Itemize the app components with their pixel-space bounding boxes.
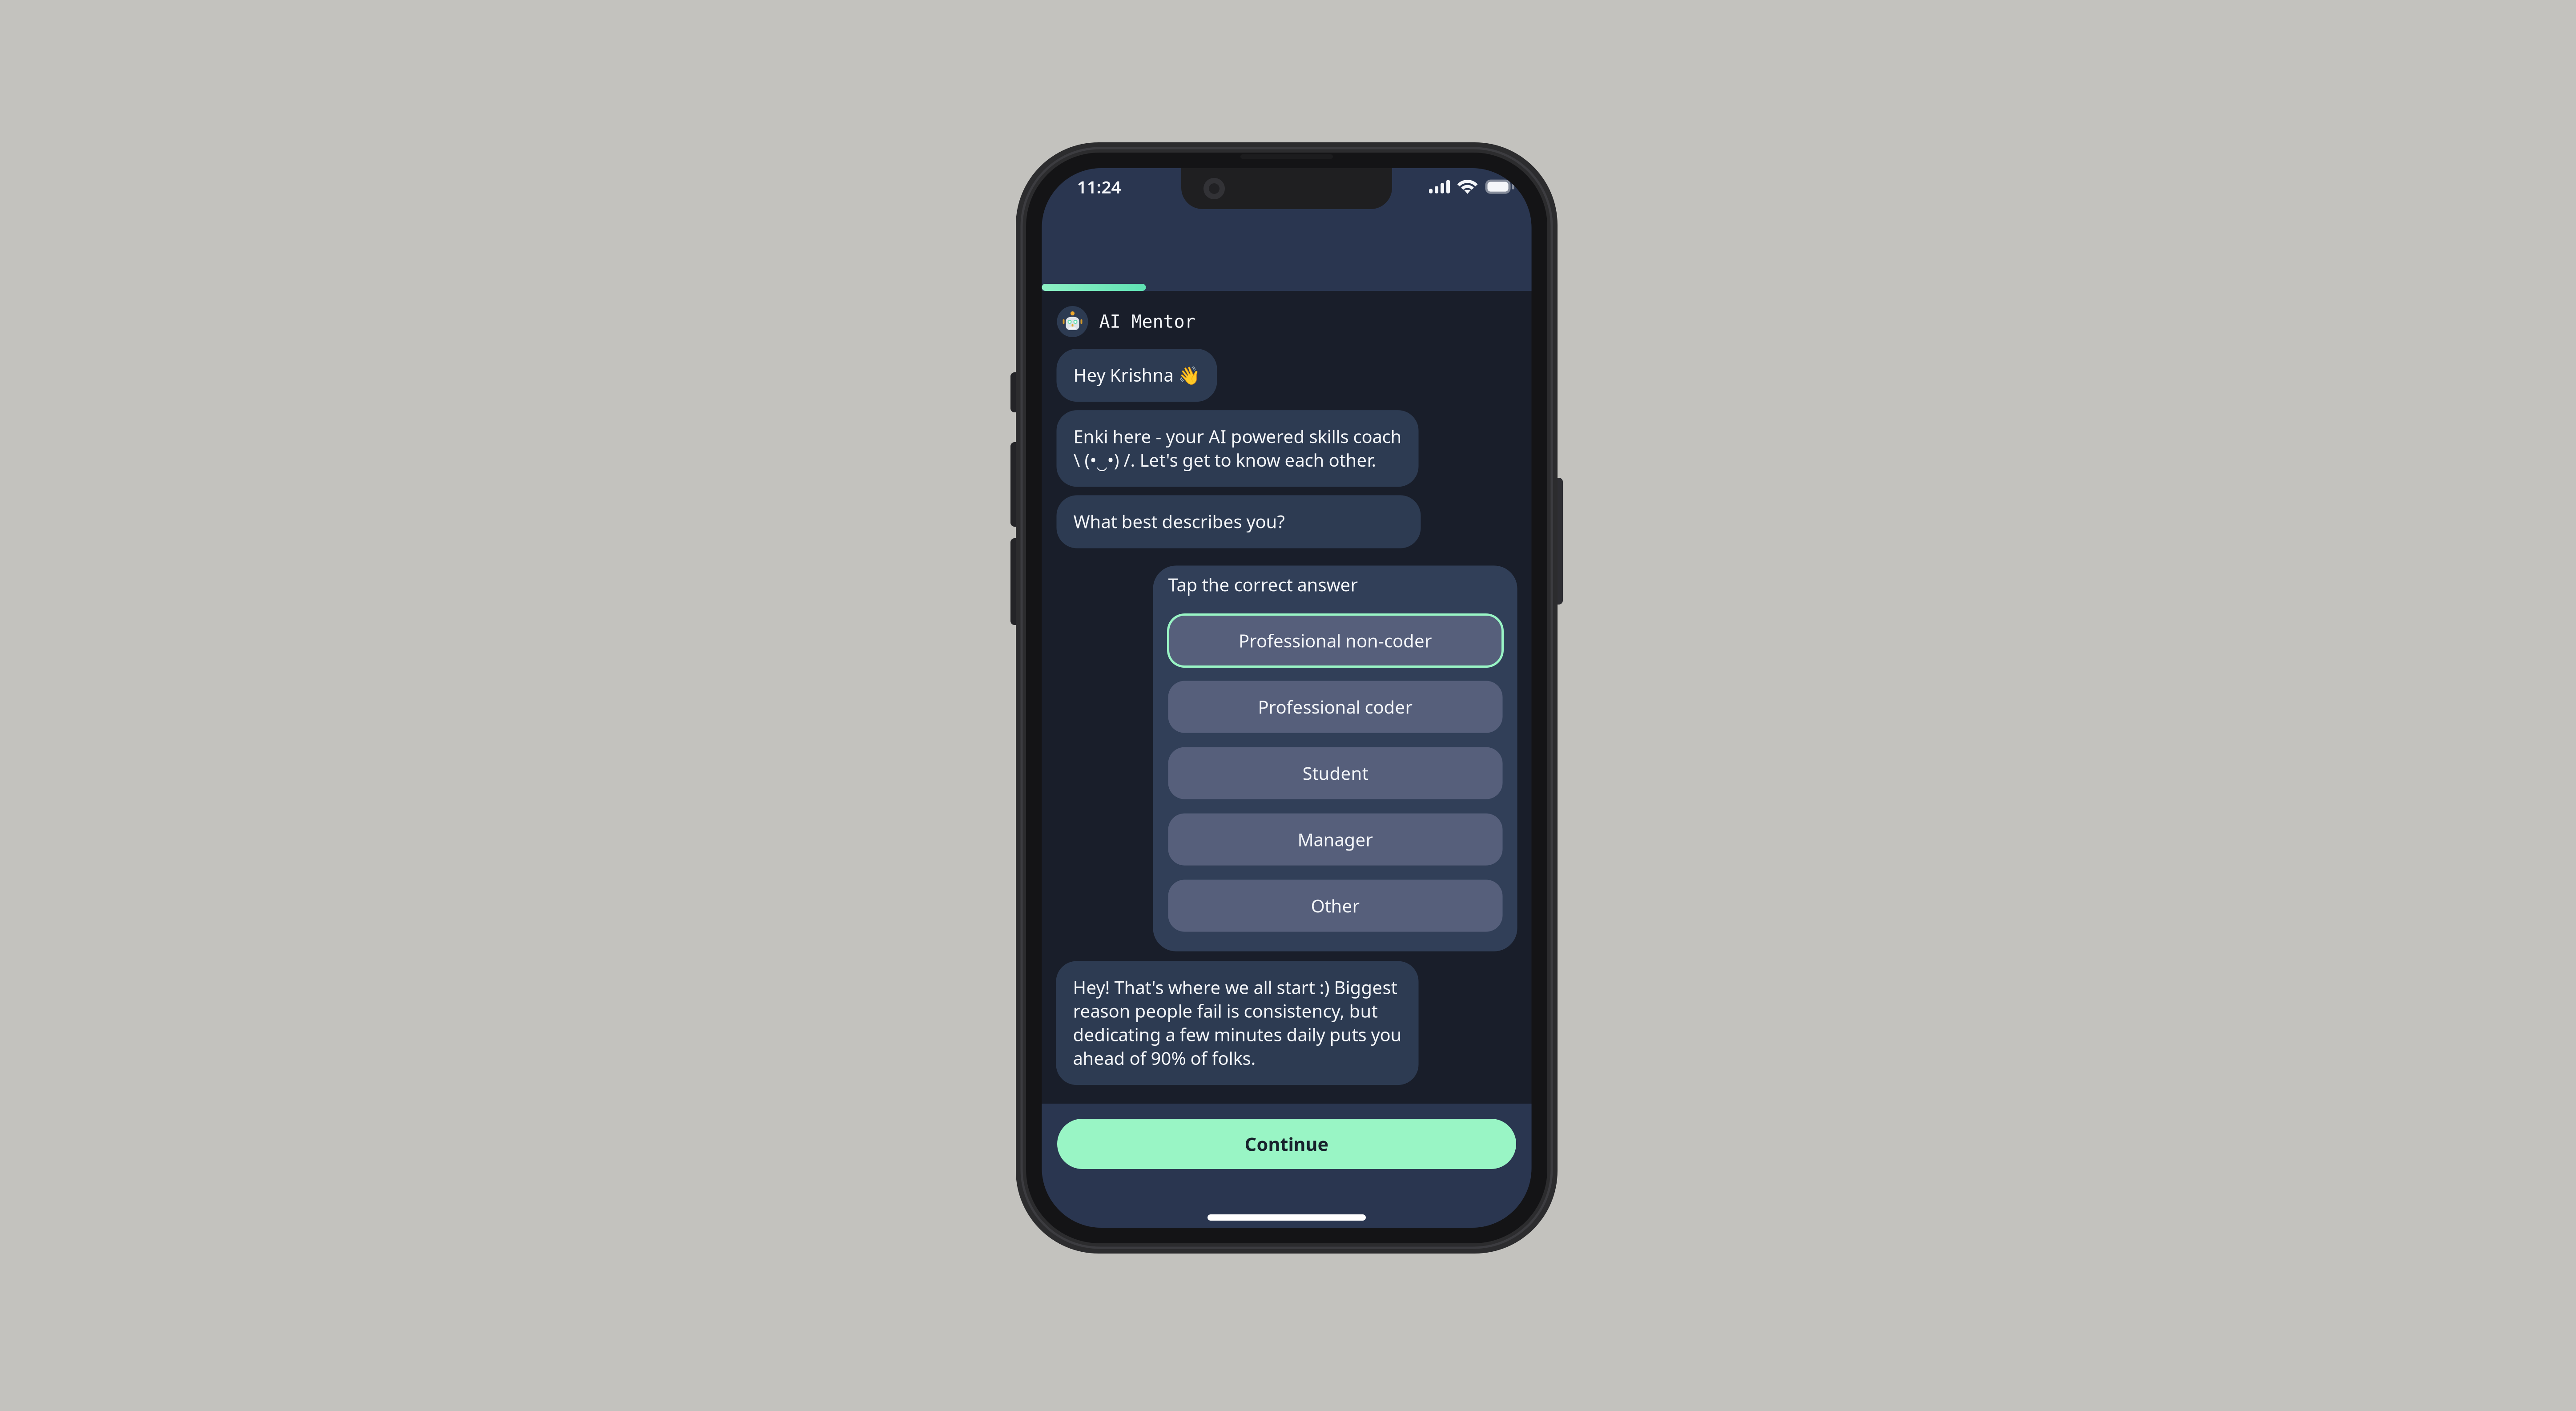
staticText: AI Mentor	[1099, 312, 1195, 332]
staticText: Hey! That's where we all start :) Bigges…	[1073, 975, 1402, 1070]
staticText: Other	[1311, 894, 1360, 918]
staticText: Continue	[1245, 1132, 1329, 1156]
staticText: Professional coder	[1258, 695, 1413, 719]
staticText: Manager	[1298, 828, 1373, 851]
staticText: Enki here - your AI powered skills coach…	[1073, 424, 1402, 472]
button[interactable]: Other	[1168, 880, 1503, 932]
staticText: Tap the correct answer	[1168, 573, 1358, 596]
button[interactable]: Professional coder	[1168, 681, 1503, 733]
staticText: Student	[1302, 761, 1368, 785]
button[interactable]: Continue	[1057, 1119, 1516, 1169]
button[interactable]: Manager	[1168, 813, 1503, 865]
button[interactable]: Professional non-coder	[1168, 615, 1503, 667]
staticText: Hey Krishna 👋	[1073, 363, 1200, 387]
staticText: What best describes you?	[1073, 510, 1285, 533]
button[interactable]: Student	[1168, 747, 1503, 799]
staticText: 11:24	[1077, 175, 1121, 198]
staticText: Professional non-coder	[1239, 629, 1432, 652]
